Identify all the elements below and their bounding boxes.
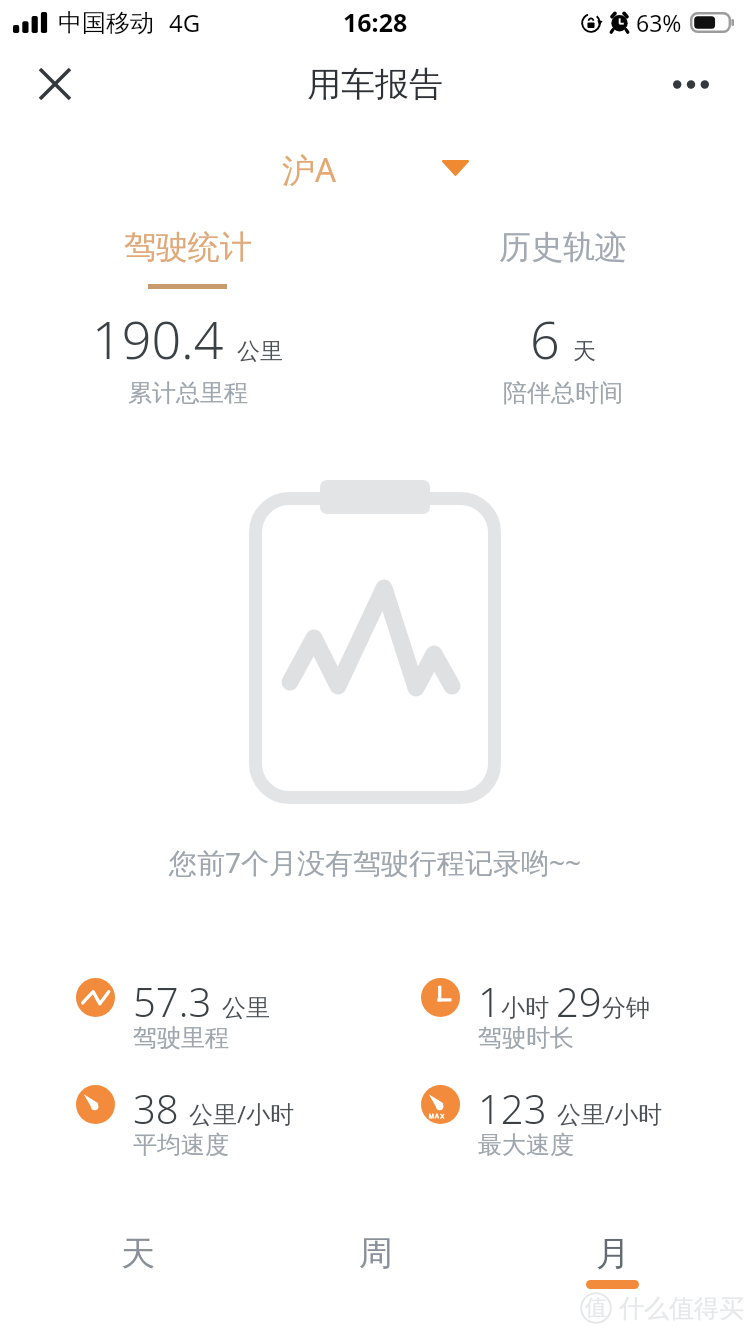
- button[interactable]: 天: [19, 1228, 257, 1334]
- button[interactable]: 驾驶统计: [0, 225, 375, 291]
- button[interactable]: Close: [17, 46, 93, 122]
- staticText: 周: [359, 1232, 393, 1275]
- staticText: 1: [478, 974, 501, 1028]
- staticText: 天: [121, 1232, 155, 1275]
- staticText: 驾驶时长: [478, 1023, 574, 1053]
- staticText: 4G: [169, 6, 201, 39]
- button[interactable]: 周: [257, 1228, 494, 1334]
- staticText: 16:28: [343, 5, 408, 39]
- staticText: 6: [530, 303, 560, 374]
- staticText: 中国移动: [58, 8, 154, 38]
- button[interactable]: 38: [76, 1081, 375, 1165]
- staticText: 什么值得买: [619, 1293, 744, 1324]
- staticText: 123: [478, 1081, 547, 1135]
- staticText: 57.3: [133, 974, 212, 1028]
- staticText: 38: [133, 1081, 179, 1135]
- staticText: 公里: [237, 337, 283, 366]
- staticText: 驾驶统计: [124, 227, 252, 267]
- staticText: 累计总里程: [128, 378, 248, 408]
- button[interactable]: 57.3: [76, 974, 375, 1058]
- staticText: 您前7个月没有驾驶行程记录哟~~: [0, 843, 750, 881]
- staticText: 63%: [636, 7, 682, 38]
- staticText: 分钟: [602, 993, 650, 1023]
- staticText: 月: [596, 1232, 630, 1275]
- staticText: 历史轨迹: [499, 227, 627, 267]
- staticText: 陪伴总时间: [503, 378, 623, 408]
- button[interactable]: More options: [653, 46, 729, 122]
- staticText: 190.4: [92, 303, 224, 374]
- button[interactable]: 历史轨迹: [375, 225, 750, 291]
- staticText: 驾驶里程: [133, 1023, 229, 1053]
- staticText: 平均速度: [133, 1130, 229, 1160]
- button[interactable]: 1: [421, 974, 750, 1058]
- button[interactable]: 沪A: [276, 143, 475, 196]
- staticText: 沪A: [282, 147, 337, 192]
- staticText: 小时: [501, 993, 549, 1023]
- staticText: 29: [556, 974, 602, 1028]
- staticText: 公里: [222, 993, 270, 1023]
- staticText: 公里/小时: [189, 1097, 294, 1130]
- staticText: 用车报告: [307, 63, 443, 106]
- staticText: 值: [585, 1294, 607, 1322]
- staticText: 公里/小时: [557, 1097, 662, 1130]
- staticText: 天: [573, 337, 596, 366]
- button[interactable]: 月: [494, 1228, 731, 1334]
- button[interactable]: 123: [421, 1081, 750, 1165]
- staticText: 最大速度: [478, 1130, 574, 1160]
